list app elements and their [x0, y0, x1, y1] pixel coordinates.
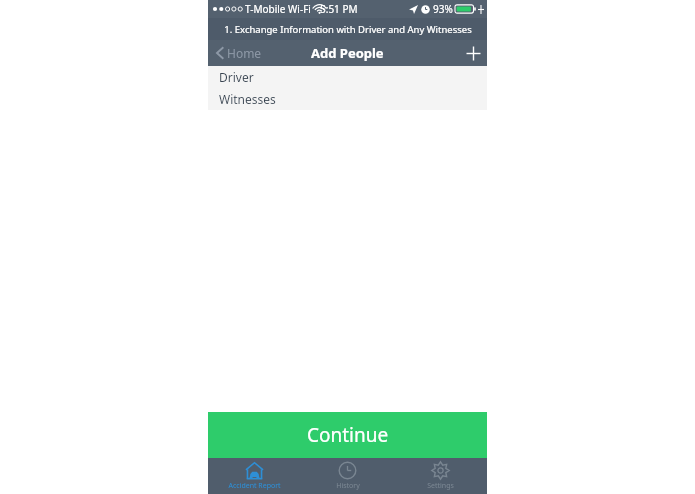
button[interactable]: Driver	[208, 66, 487, 88]
staticText: Witnesses	[219, 91, 276, 107]
button[interactable]: History	[301, 458, 394, 494]
staticText: History	[336, 481, 360, 491]
staticText: Settings	[427, 481, 454, 491]
staticText: Add People	[311, 44, 384, 62]
button[interactable]: Continue	[208, 412, 487, 458]
button[interactable]: Home	[208, 40, 270, 66]
staticText: T-Mobile Wi-Fi	[245, 2, 311, 16]
staticText: 5:51 PM	[320, 2, 358, 16]
staticText: 1. Exchange Information with Driver and …	[224, 23, 472, 36]
staticText: Continue	[307, 422, 389, 448]
button[interactable]: Accident Report	[208, 458, 301, 494]
button[interactable]: Settings	[394, 458, 487, 494]
staticText: Accident Report	[228, 481, 281, 491]
staticText: Driver	[219, 69, 254, 85]
button[interactable]: Witnesses	[208, 88, 487, 110]
staticText: 93%	[433, 2, 453, 16]
staticText: Home	[227, 45, 262, 61]
button[interactable]: Add person	[459, 40, 487, 66]
